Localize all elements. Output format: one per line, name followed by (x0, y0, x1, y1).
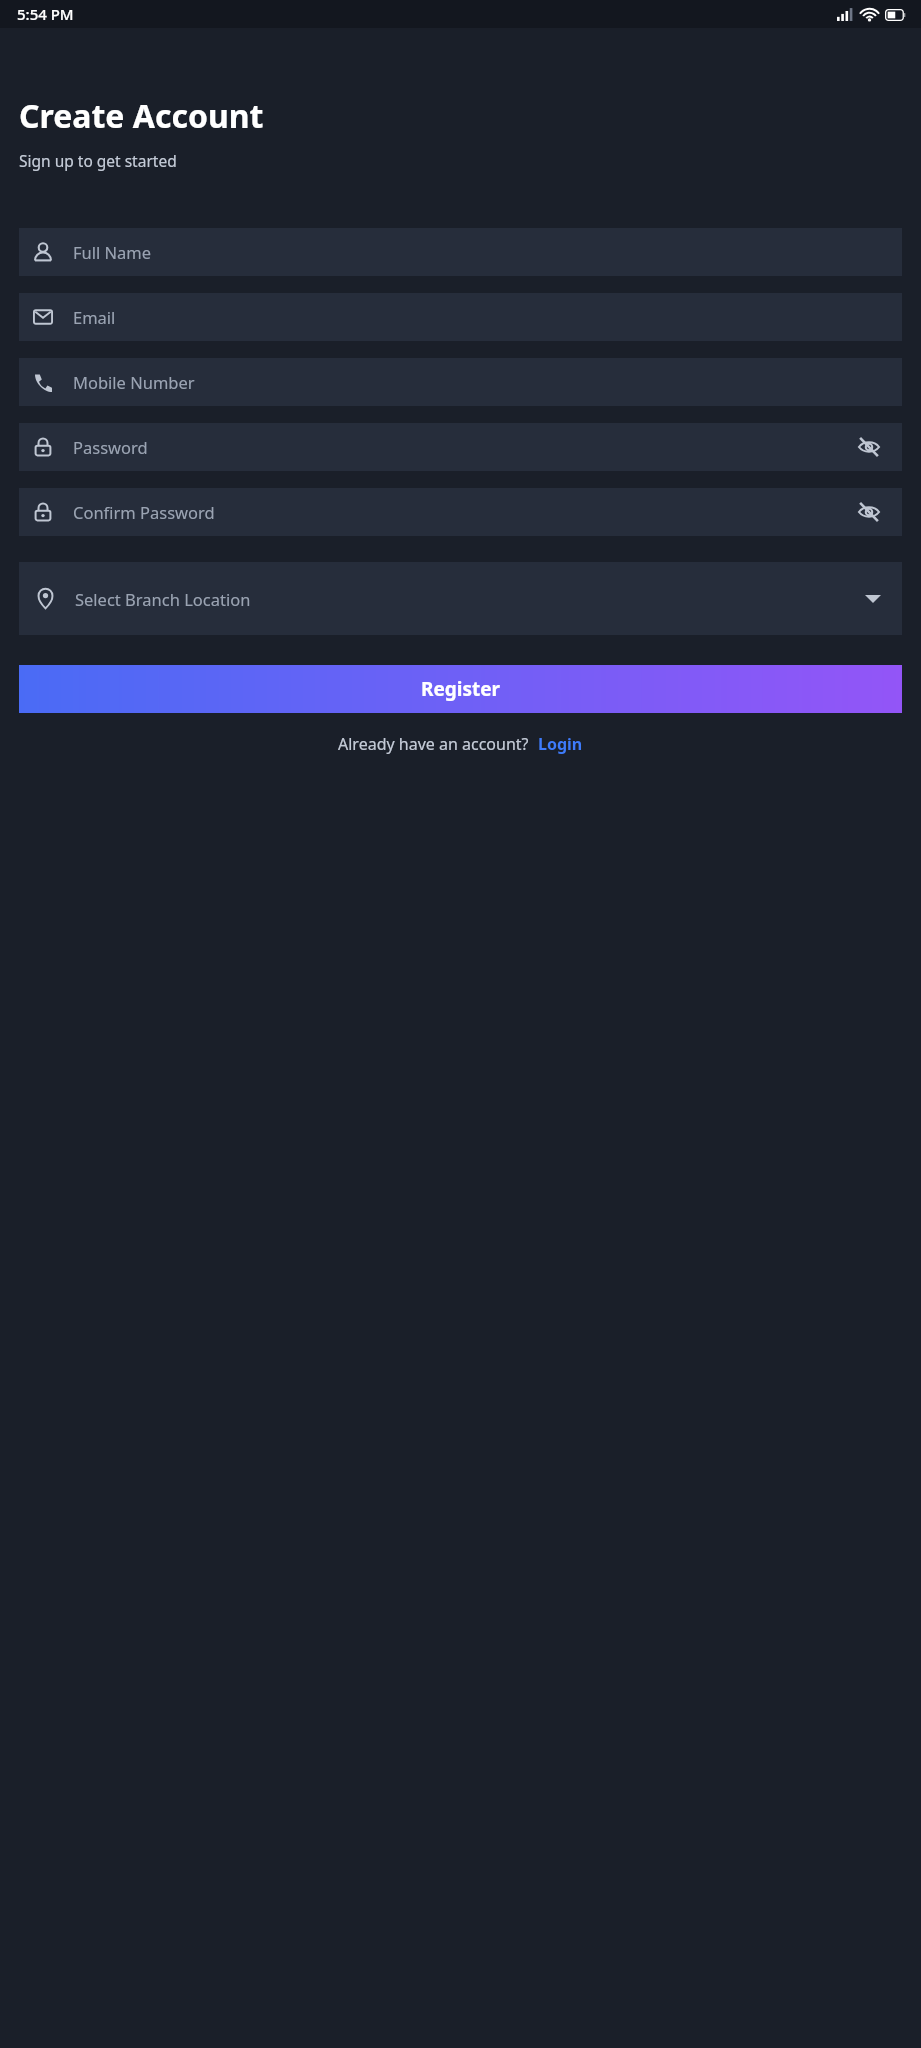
button[interactable]: Email (19, 293, 902, 341)
button[interactable]: Toggle password visibility (854, 497, 884, 527)
button[interactable]: Password (19, 423, 902, 471)
button[interactable]: Full Name (19, 228, 902, 276)
staticText: Sign up to get started (19, 150, 177, 171)
staticText: Confirm Password (73, 501, 854, 523)
staticText: Register (421, 676, 501, 702)
staticText: Full Name (73, 241, 884, 263)
staticText: Already have an account? (338, 733, 529, 755)
button[interactable]: Mobile Number (19, 358, 902, 406)
staticText: Create Account (19, 94, 264, 138)
button[interactable]: Register (19, 665, 902, 713)
staticText: Mobile Number (73, 371, 884, 393)
staticText: Login (538, 733, 583, 755)
staticText: Email (73, 306, 884, 328)
staticText: Select Branch Location (75, 588, 865, 610)
button[interactable]: Confirm Password (19, 488, 902, 536)
staticText: Password (73, 436, 854, 458)
button[interactable]: Select Branch Location (19, 562, 902, 635)
button[interactable]: Login (538, 733, 583, 755)
staticText: 5:54 PM (17, 4, 74, 24)
button[interactable]: Toggle password visibility (854, 432, 884, 462)
